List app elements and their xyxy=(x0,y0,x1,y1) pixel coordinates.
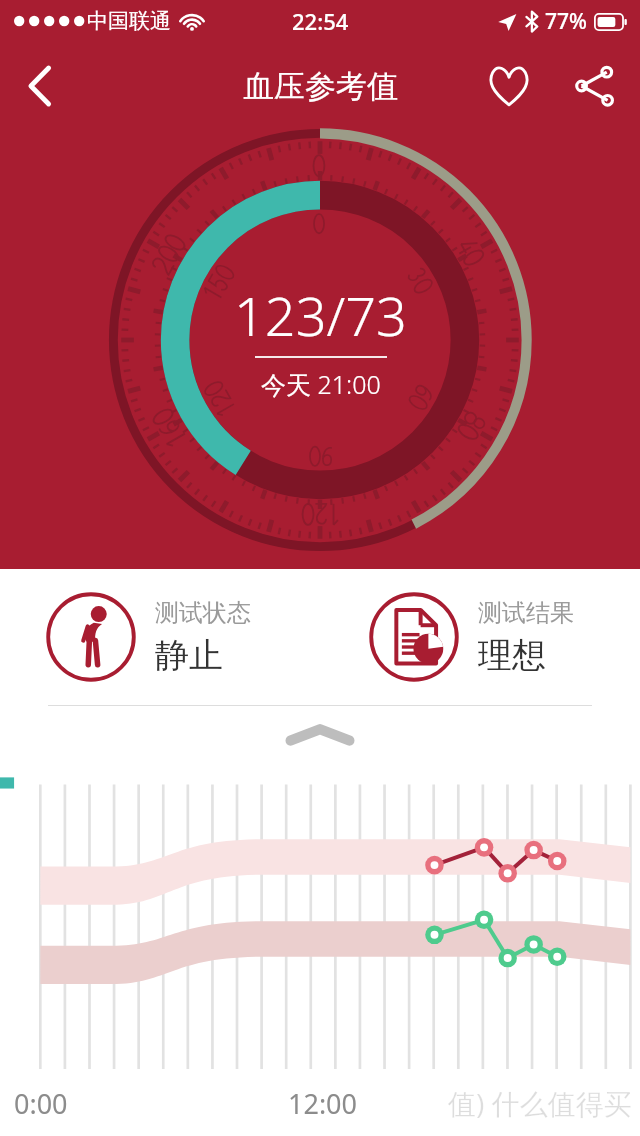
button[interactable] xyxy=(285,719,355,749)
button[interactable]: Test state xyxy=(45,591,320,683)
staticText: 理想 xyxy=(478,634,546,677)
staticText: 0:00 xyxy=(14,1085,68,1122)
staticText: 77% xyxy=(545,7,587,36)
staticText: 中国联通 xyxy=(87,8,171,34)
button[interactable]: Test result xyxy=(368,591,640,683)
staticText: 12:00 xyxy=(288,1085,358,1122)
staticText: 静止 xyxy=(155,634,223,677)
staticText: 值) 什么值得买 xyxy=(448,1084,632,1122)
staticText: 测试结果 xyxy=(478,598,574,628)
staticText: 测试状态 xyxy=(155,598,251,628)
button[interactable]: Back xyxy=(8,54,72,118)
staticText: 血压参考值 xyxy=(243,67,398,106)
button[interactable]: Share xyxy=(564,55,626,117)
button[interactable]: Favorite xyxy=(478,55,540,117)
staticText: 22:54 xyxy=(292,6,349,36)
other: Test result xyxy=(368,591,460,683)
staticText: 今天 21:00 xyxy=(261,367,381,401)
other: Test state xyxy=(45,591,137,683)
staticText: 123/73 xyxy=(234,278,407,352)
